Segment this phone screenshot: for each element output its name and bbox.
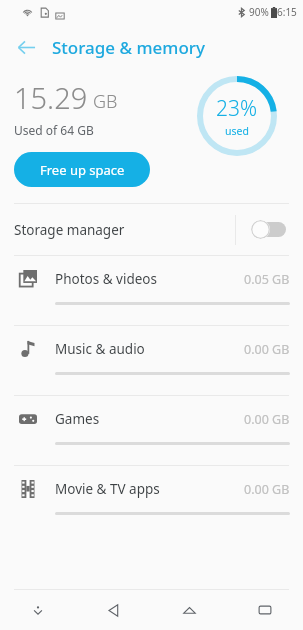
staticText: used [225,124,249,138]
button[interactable]: Storage manager toggle [236,204,303,255]
staticText: Storage & memory [52,36,205,59]
staticText: 0.00 GB [244,481,290,498]
staticText: 0.00 GB [244,411,290,428]
button[interactable]: Storage manager [0,204,303,255]
staticText: 0.00 GB [244,341,290,358]
staticText: 0.05 GB [244,271,290,288]
button[interactable]: Music & audio [0,326,303,395]
button[interactable]: Free up space [14,152,150,187]
staticText: Photos & videos [55,270,157,288]
button[interactable]: Movie & TV apps [0,466,303,535]
button[interactable]: Recent apps [227,590,303,630]
button[interactable]: Home [151,590,227,630]
staticText: Used of 64 GB [14,122,94,138]
staticText: 6:15 [277,5,297,19]
staticText: Games [55,410,100,428]
button[interactable]: Photos & videos [0,256,303,325]
button[interactable]: Back [8,29,44,65]
staticText: Music & audio [55,340,145,358]
button[interactable]: Games [0,396,303,465]
staticText: GB [93,89,118,114]
staticText: Free up space [40,161,125,179]
button[interactable]: Hide keyboard [0,590,75,630]
staticText: 90% [249,5,269,19]
staticText: Movie & TV apps [55,480,160,498]
staticText: Storage manager [14,221,125,239]
button[interactable]: Back [75,590,151,630]
staticText: 15.29 [14,78,88,117]
staticText: 23% [216,94,258,123]
